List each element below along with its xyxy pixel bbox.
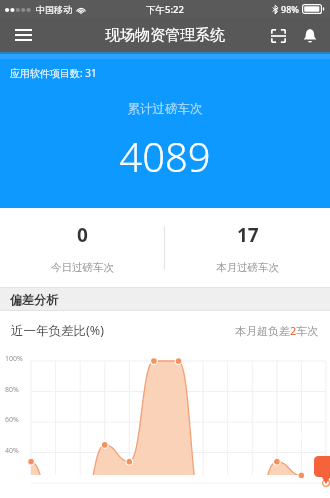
staticText: 累计过磅车次 xyxy=(0,101,330,117)
staticText: 60% xyxy=(5,415,19,425)
button[interactable]: 0 xyxy=(0,208,164,287)
staticText: 0 xyxy=(77,222,88,248)
staticText: 本月超负差2车次 xyxy=(235,323,319,338)
staticText: 下午5:22 xyxy=(146,3,184,16)
button[interactable]: Menu xyxy=(7,19,39,51)
staticText: 20 xyxy=(295,430,305,442)
staticText: 4089 xyxy=(0,129,330,183)
staticText: 17 xyxy=(237,222,259,248)
staticText: 98% xyxy=(281,3,299,15)
staticText: 40% xyxy=(5,446,19,456)
staticText: 本月过磅车次 xyxy=(216,261,279,274)
staticText: 80% xyxy=(5,385,19,395)
staticText: 现场物资管理系统 xyxy=(105,26,225,45)
staticText: 近一年负差比(%) xyxy=(11,322,104,339)
staticText: 中国移动 xyxy=(36,4,72,15)
button[interactable]: Notifications xyxy=(294,20,325,51)
button[interactable]: 17 xyxy=(165,208,330,287)
button[interactable]: Scan xyxy=(263,20,294,51)
staticText: 偏差分析 xyxy=(10,292,58,307)
staticText: 100% xyxy=(5,354,23,364)
staticText: 今日过磅车次 xyxy=(51,261,114,274)
staticText: 应用软件项目数: 31 xyxy=(10,66,97,80)
